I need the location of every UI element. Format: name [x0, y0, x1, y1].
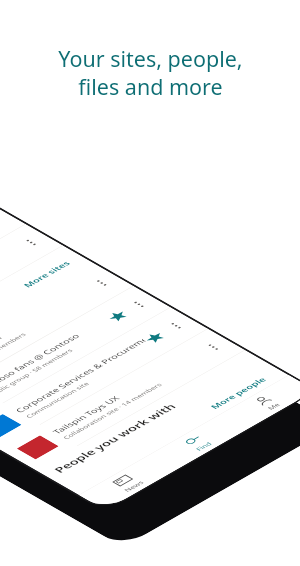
staticText: More sites	[17, 258, 76, 290]
staticText: More people	[204, 374, 272, 412]
button[interactable]: More options	[124, 295, 154, 314]
staticText: Me	[265, 400, 283, 412]
button[interactable]: Find	[148, 414, 247, 471]
button[interactable]: More options	[199, 337, 228, 357]
button[interactable]: Contoso Portal	[0, 197, 39, 349]
staticText: News	[121, 478, 147, 494]
button[interactable]: Contoso fans @ Contoso	[0, 281, 184, 432]
button[interactable]: More people	[46, 361, 300, 498]
staticText: Collaboration site · 14 members	[54, 380, 170, 442]
staticText: Public group · 58 members	[0, 346, 80, 399]
button[interactable]: Contoso Team	[0, 259, 147, 411]
staticText: Communication site	[19, 379, 95, 420]
staticText: Corporate Services & Procurement	[4, 335, 156, 416]
staticText: Contoso fans @ Contoso	[0, 330, 89, 394]
button[interactable]: Corporate Services & Procurement	[0, 302, 221, 454]
button[interactable]: More options	[16, 233, 46, 252]
button[interactable]: News	[78, 454, 177, 511]
button[interactable]: Mark 8 Project Team	[0, 219, 76, 370]
staticText: Tailspin Toys UX	[46, 393, 126, 437]
button[interactable]: More options	[161, 316, 191, 335]
button[interactable]: More options	[87, 273, 116, 293]
staticText: Find	[193, 439, 215, 453]
staticText: People you work with	[43, 400, 187, 477]
button[interactable]: Tailspin Toys UX	[0, 323, 258, 475]
button[interactable]: More options	[0, 211, 9, 231]
button[interactable]: Me	[218, 374, 300, 431]
staticText: Your sites, people, files and more	[58, 44, 243, 101]
staticText: Team site · 24 members	[0, 330, 33, 378]
button[interactable]: More sites	[0, 241, 110, 389]
staticText: Contoso Team	[0, 332, 8, 373]
